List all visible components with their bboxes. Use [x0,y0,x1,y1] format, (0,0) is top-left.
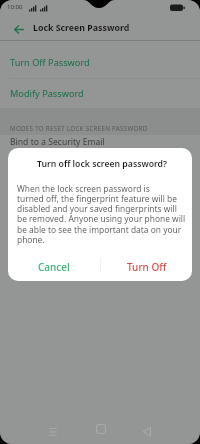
staticText: Turn Off [127,260,167,274]
staticText: Bind to a Security Email [10,136,105,148]
staticText: MODES TO RESET LOCK SCREEN PASSWORD [10,124,148,132]
staticText: 10:00 [7,3,23,11]
button[interactable]: Modify Password [0,79,200,108]
button[interactable]: Bind to a Security Email [0,135,200,165]
button[interactable]: Turn Off [102,252,192,281]
staticText: Modify Password [10,87,84,100]
staticText: turned off, the fingerprint feature will… [17,193,177,204]
staticText: disabled and your saved fingerprints wil… [17,203,177,214]
staticText: be removed. Anyone using your phone will [17,213,186,224]
button[interactable] [9,19,29,39]
staticText: phone. [17,234,45,245]
button[interactable]: Cancel [8,252,100,281]
button[interactable]: Turn Off Password [0,41,200,78]
staticText: Cancel [38,260,70,274]
staticText: be able to see the important data on you… [17,224,182,235]
staticText: Turn off lock screen password? [10,158,192,170]
staticText: Turn Off Password [10,56,90,69]
staticText: When the lock screen password is [17,183,150,194]
staticText: Lock Screen Password [33,22,130,34]
